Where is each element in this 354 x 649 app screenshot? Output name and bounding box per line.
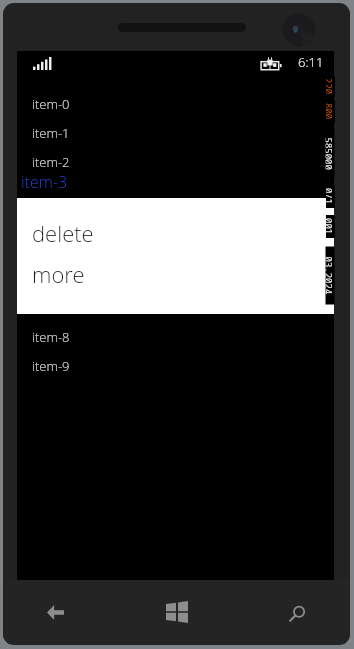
button[interactable]: Start	[136, 580, 217, 644]
button[interactable]: item-1	[17, 118, 334, 147]
staticText: 6:11	[298, 53, 324, 71]
staticText: 03.2024	[325, 256, 334, 294]
button[interactable]: Back	[15, 580, 96, 644]
staticText: item-2	[32, 153, 70, 171]
button[interactable]: more	[17, 259, 334, 289]
staticText: 001	[326, 218, 335, 235]
button[interactable]: item-3	[17, 167, 334, 196]
staticText: delete	[32, 218, 94, 248]
button[interactable]: item-8	[17, 322, 334, 351]
staticText: 220	[326, 78, 335, 95]
staticText: more	[32, 259, 85, 289]
staticText: item-8	[32, 328, 70, 346]
button[interactable]: Search	[256, 580, 337, 644]
staticText: 0/1	[326, 188, 335, 205]
staticText: 585000	[325, 137, 334, 170]
button[interactable]: delete	[17, 218, 334, 248]
button[interactable]: item-9	[17, 351, 334, 380]
staticText: item-0	[32, 95, 70, 113]
staticText: item-3	[21, 171, 68, 193]
button[interactable]: item-0	[17, 89, 334, 118]
staticText: 800	[326, 103, 335, 120]
staticText: item-9	[32, 357, 70, 375]
button[interactable]: item-2	[17, 147, 334, 176]
staticText: item-1	[32, 124, 70, 142]
